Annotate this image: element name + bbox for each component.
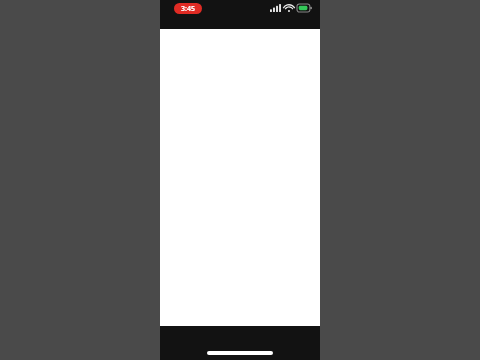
staticText: 3:45 [181, 4, 195, 14]
other: Wi-Fi [284, 4, 294, 12]
button[interactable]: 3:45 [174, 3, 202, 14]
other: Cellular signal [270, 4, 281, 12]
other: Battery [297, 4, 312, 12]
